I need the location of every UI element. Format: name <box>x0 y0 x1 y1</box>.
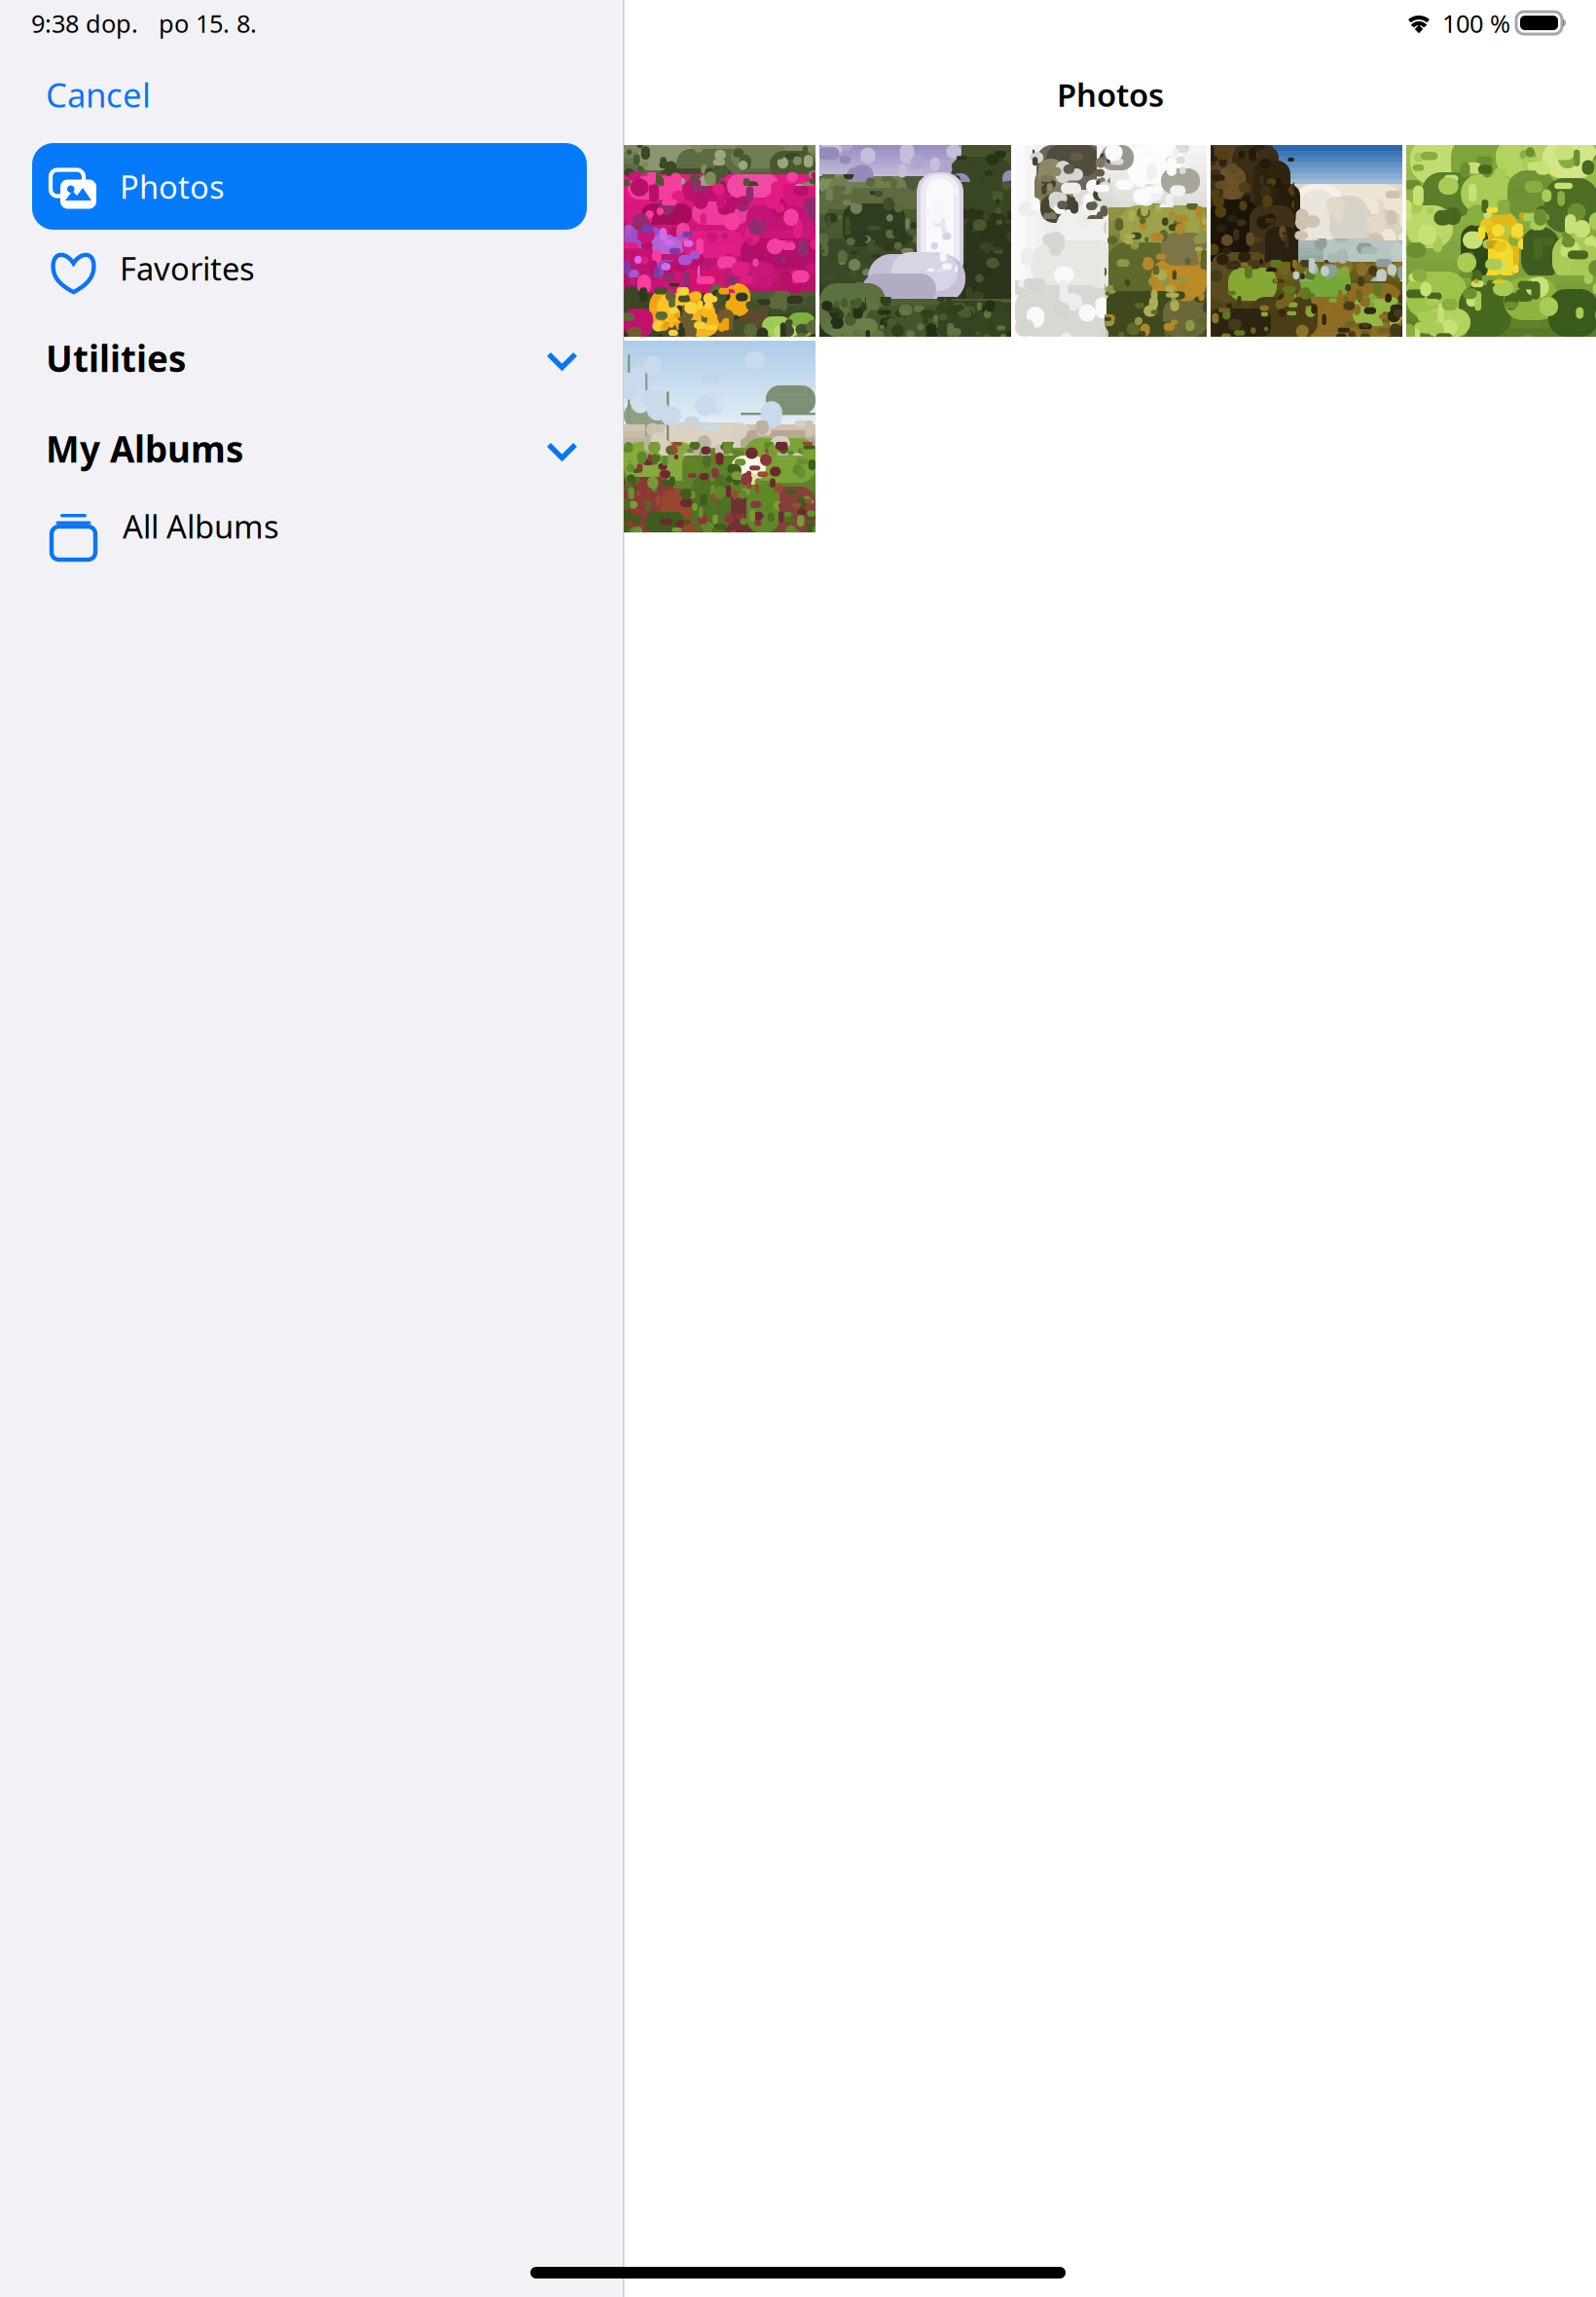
staticText: Photos <box>120 165 225 208</box>
staticText: Photos <box>1057 73 1164 116</box>
button[interactable]: Utilities <box>46 329 565 387</box>
button[interactable]: Cancel <box>46 63 240 126</box>
button[interactable]: My Albums <box>46 419 565 478</box>
button[interactable]: Photo, pink ice plant flowers <box>624 145 816 337</box>
staticText: Cancel <box>46 71 151 117</box>
staticText: All Albums <box>123 504 279 548</box>
button[interactable]: Favorites <box>32 225 587 311</box>
button[interactable]: All Albums <box>32 483 587 569</box>
button[interactable]: Photos <box>32 143 587 230</box>
staticText: 9:38 dop. po 15. 8. <box>31 7 257 40</box>
button[interactable]: Photo, waterfall over a green cliff <box>819 145 1011 337</box>
button[interactable]: Photo, cascade over mossy rock <box>1015 145 1207 337</box>
staticText: My Albums <box>46 424 243 473</box>
button[interactable]: Photo, waterfall and river canyon <box>1211 145 1402 337</box>
staticText: Utilities <box>46 334 186 382</box>
staticText: 100 % <box>1442 7 1510 40</box>
staticText: Favorites <box>120 247 255 290</box>
button[interactable]: Photo, dune grass and a pale flower <box>624 341 816 532</box>
button[interactable]: Photo, green leaves with one yellow leaf <box>1406 145 1596 337</box>
